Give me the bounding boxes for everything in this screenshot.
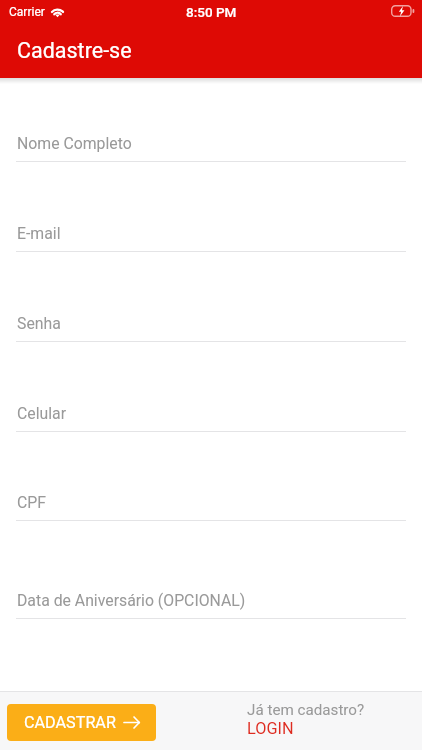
staticText: Nome Completo (17, 134, 132, 153)
staticText: Celular (17, 404, 66, 423)
staticText: 8:50 PM (186, 4, 237, 20)
button[interactable]: Data de Aniversário (OPCIONAL) (0, 582, 422, 622)
button[interactable]: E-mail (0, 215, 422, 255)
button[interactable]: CPF (0, 484, 422, 524)
button[interactable]: Senha (0, 305, 422, 345)
button[interactable]: Já tem cadastro? (247, 701, 365, 738)
staticText: Data de Aniversário (OPCIONAL) (17, 591, 246, 610)
staticText: Cadastre-se (17, 38, 132, 63)
staticText: LOGIN (247, 719, 294, 738)
staticText: Já tem cadastro? (247, 701, 365, 719)
staticText: Carrier (9, 5, 45, 19)
staticText: Senha (17, 314, 61, 333)
button[interactable]: Celular (0, 395, 422, 435)
staticText: E-mail (17, 224, 61, 243)
staticText: CPF (17, 493, 46, 512)
staticText: CADASTRAR (24, 713, 116, 732)
button[interactable]: Nome Completo (0, 125, 422, 165)
button[interactable]: CADASTRAR (7, 704, 156, 741)
